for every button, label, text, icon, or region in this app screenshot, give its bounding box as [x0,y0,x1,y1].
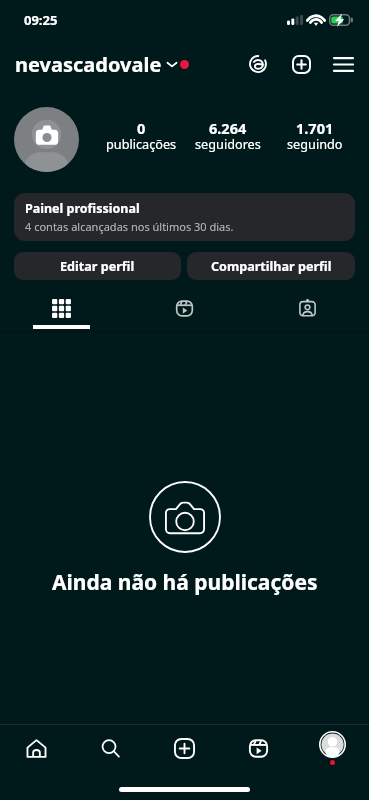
button[interactable]: Profile photo [14,107,79,172]
staticText: Editar perfil [60,258,135,275]
button[interactable]: Reels [123,293,246,331]
button[interactable]: Profile [295,722,369,774]
staticText: seguindo [287,135,343,152]
staticText: seguidores [195,135,261,152]
button[interactable]: 6.264 [184,118,271,155]
staticText: 6.264 [209,118,247,138]
button[interactable]: 1.701 [271,118,358,155]
staticText: 0 [137,118,146,138]
staticText: Compartilhar perfil [211,258,332,275]
button[interactable]: Editar perfil [14,252,181,280]
button[interactable]: Home [0,722,73,774]
button[interactable]: Create [147,722,221,774]
button[interactable]: Menu [325,46,361,82]
staticText: Painel profissional [25,200,140,217]
button[interactable]: Search [73,722,147,774]
button[interactable]: Reels [221,722,295,774]
button[interactable]: Posts grid [0,293,123,331]
staticText: publicações [106,135,177,152]
button[interactable]: Threads [240,46,276,82]
button[interactable]: 0 [98,118,184,155]
button[interactable]: Compartilhar perfil [187,252,355,280]
staticText: Ainda não há publicações [52,568,318,597]
staticText: nevascadovale [15,51,162,78]
button[interactable]: New post [283,46,319,82]
staticText: 4 contas alcançadas nos últimos 30 dias. [25,219,234,234]
button[interactable]: Tagged [246,293,369,331]
staticText: 09:25 [24,11,58,29]
button[interactable]: Painel profissional [14,193,355,241]
button[interactable]: nevascadovale [15,46,189,82]
staticText: 1.701 [296,118,334,138]
